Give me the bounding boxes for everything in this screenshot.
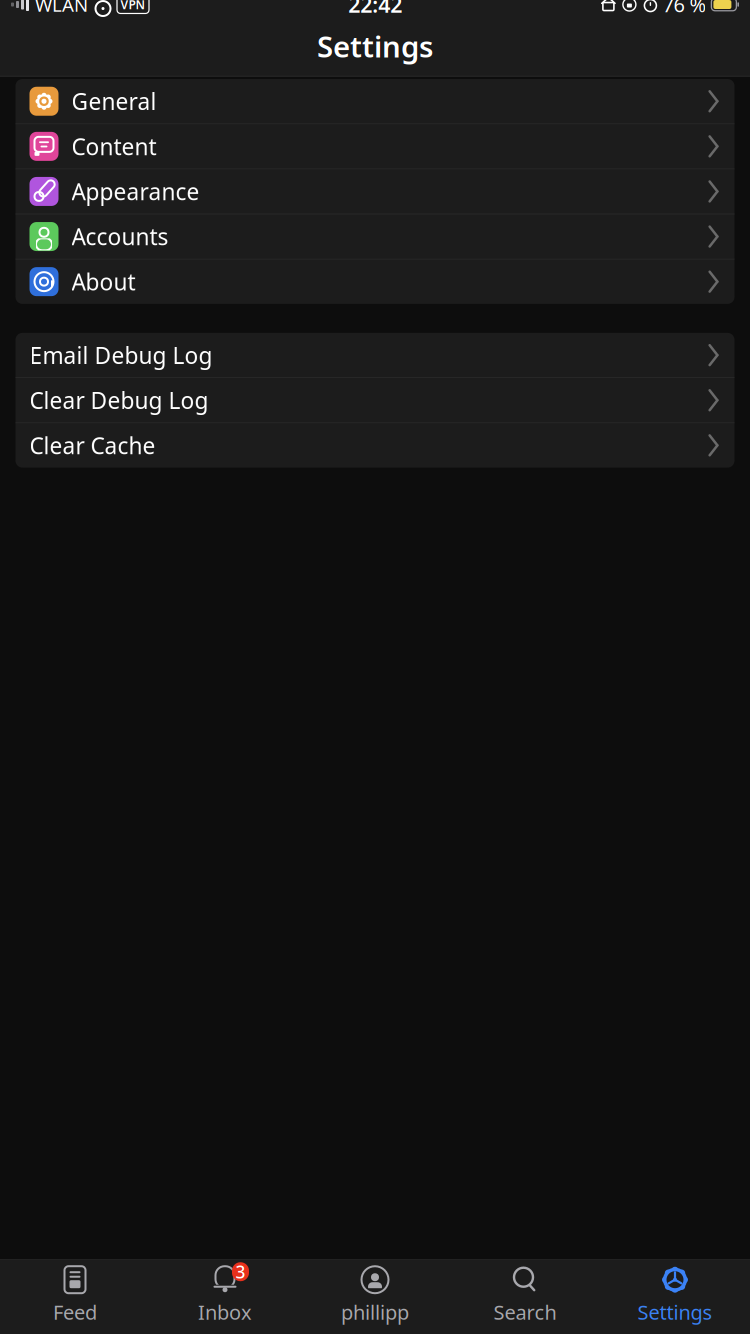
staticText: 76 %	[662, 0, 706, 18]
button[interactable]: phillipp	[300, 1258, 450, 1334]
staticText: phillipp	[341, 1299, 409, 1325]
button[interactable]: Search	[450, 1258, 600, 1334]
staticText: Email Debug Log	[29, 340, 212, 370]
button[interactable]: Clear Debug Log	[15, 378, 734, 422]
staticText: Clear Cache	[29, 430, 155, 460]
staticText: Accounts	[71, 221, 168, 252]
button[interactable]: Feed	[0, 1258, 150, 1334]
button[interactable]: Settings	[0, 15, 750, 76]
staticText: Clear Debug Log	[29, 385, 208, 415]
staticText: Content	[71, 131, 156, 161]
staticText: Search	[493, 1299, 556, 1325]
staticText: Settings	[637, 1299, 712, 1325]
staticText: 3	[235, 1260, 245, 1283]
button[interactable]: Settings	[600, 1258, 750, 1334]
staticText: Settings	[317, 26, 433, 65]
staticText: Feed	[53, 1299, 97, 1325]
button[interactable]: General	[15, 79, 734, 123]
staticText: Appearance	[71, 176, 199, 206]
staticText: 22:42	[348, 0, 402, 19]
staticText: WLAN	[35, 0, 88, 17]
button[interactable]: Accounts	[15, 214, 734, 259]
button[interactable]: About	[15, 259, 734, 304]
button[interactable]: Content	[15, 124, 734, 169]
button[interactable]: Appearance	[15, 169, 734, 214]
staticText: General	[71, 86, 156, 116]
button[interactable]: 3	[150, 1258, 300, 1334]
button[interactable]: Email Debug Log	[15, 333, 734, 377]
button[interactable]: Clear Cache	[15, 423, 734, 468]
staticText: About	[71, 267, 135, 297]
staticText: Inbox	[198, 1299, 252, 1325]
staticText: VPN	[120, 0, 145, 12]
